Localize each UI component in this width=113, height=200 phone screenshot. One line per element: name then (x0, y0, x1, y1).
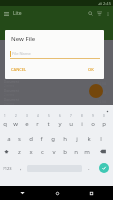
staticText: n (74, 148, 78, 156)
staticText: e (25, 120, 29, 128)
staticText: 3 (26, 114, 28, 118)
staticText: s (18, 135, 21, 143)
button[interactable]: g (47, 129, 59, 144)
button[interactable]: Document (0, 97, 113, 106)
button[interactable]: v (48, 144, 59, 159)
staticText: 12 KB (98, 82, 107, 86)
button[interactable]: f (36, 129, 47, 144)
staticText: h (63, 135, 67, 143)
staticText: c (41, 148, 44, 156)
button[interactable]: 7 (65, 114, 76, 129)
button[interactable]: 9 (87, 114, 98, 129)
staticText: 0 (103, 114, 105, 118)
button[interactable]: 4 (32, 114, 43, 129)
button[interactable]: z (13, 144, 25, 159)
button[interactable]: Comma (15, 160, 26, 176)
staticText: l (100, 135, 102, 143)
button[interactable]: m (81, 144, 92, 159)
staticText: 5 (48, 114, 50, 118)
staticText: Lite (13, 10, 22, 17)
staticText: 1 (4, 114, 6, 118)
staticText: x (29, 148, 33, 156)
staticText: 8 (81, 114, 83, 118)
button[interactable]: l (95, 129, 107, 144)
staticText: 2 items (4, 102, 15, 106)
button[interactable]: Sort (95, 9, 104, 18)
staticText: v (52, 148, 56, 156)
button[interactable]: 3 (21, 114, 32, 129)
staticText: r (36, 120, 39, 128)
button[interactable]: s (14, 129, 25, 144)
button[interactable]: Back (16, 187, 28, 199)
button[interactable]: 5 (43, 114, 54, 129)
button[interactable]: 2 (10, 114, 21, 129)
button[interactable]: Menu (2, 9, 11, 18)
staticText: j (76, 135, 78, 143)
button[interactable]: d (25, 129, 36, 144)
button[interactable]: New file (89, 84, 103, 98)
staticText: m (84, 148, 90, 156)
button[interactable]: Keyboard options (105, 109, 109, 113)
staticText: g (51, 135, 55, 143)
staticText: y (58, 120, 62, 128)
button[interactable]: Document (0, 79, 113, 88)
staticText: k (87, 135, 91, 143)
staticText: b (63, 148, 67, 156)
staticText: OK (88, 67, 94, 72)
button[interactable]: j (71, 129, 83, 144)
button[interactable]: ?123 (0, 160, 15, 176)
staticText: 12 KB (98, 91, 107, 95)
staticText: o (91, 120, 95, 128)
button[interactable]: Shift (0, 144, 13, 159)
button[interactable]: Backspace (92, 144, 113, 159)
button[interactable]: x (25, 144, 37, 159)
button[interactable]: h (59, 129, 71, 144)
button[interactable]: Home (51, 187, 63, 199)
button[interactable]: k (83, 129, 95, 144)
staticText: q (3, 120, 7, 128)
staticText: . (88, 164, 90, 172)
button[interactable]: c (37, 144, 48, 159)
staticText: z (18, 148, 21, 156)
staticText: f (40, 135, 43, 143)
button[interactable]: b (59, 144, 70, 159)
button[interactable]: a (3, 129, 14, 144)
staticText: 9 (92, 114, 94, 118)
staticText: 6 (59, 114, 61, 118)
staticText: 7 (70, 114, 72, 118)
staticText: w (13, 120, 18, 128)
button[interactable]: 0 (98, 114, 109, 129)
button[interactable]: 6 (54, 114, 65, 129)
staticText: New File (11, 35, 36, 43)
button[interactable]: Document (0, 88, 113, 97)
button[interactable]: n (70, 144, 81, 159)
staticText: u (69, 120, 73, 128)
staticText: p (102, 120, 106, 128)
staticText: d (29, 135, 33, 143)
staticText: t (47, 120, 50, 128)
button[interactable]: CANCEL (8, 64, 30, 75)
button[interactable]: 1 (0, 114, 10, 129)
staticText: , (20, 164, 22, 172)
button[interactable]: 8 (76, 114, 87, 129)
staticText: 4 (37, 114, 39, 118)
staticText: a (7, 135, 11, 143)
button[interactable]: More options (104, 10, 111, 17)
button[interactable]: Period (83, 160, 94, 176)
staticText: 2:45 (103, 1, 111, 6)
button[interactable]: Enter (99, 163, 109, 173)
staticText: File Name (12, 51, 31, 56)
staticText: CANCEL (11, 67, 27, 72)
staticText: i (81, 120, 83, 128)
button[interactable]: Search (86, 9, 95, 18)
button[interactable]: Recent apps (85, 187, 97, 199)
staticText: 2 (15, 114, 17, 118)
button[interactable]: OK (85, 64, 97, 75)
